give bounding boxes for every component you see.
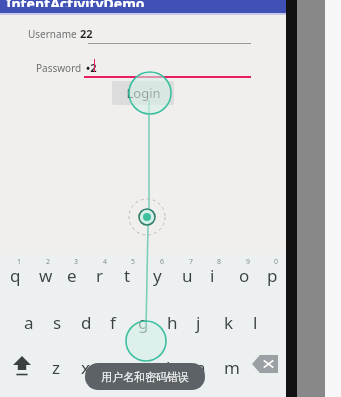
staticText: h bbox=[167, 311, 178, 334]
staticText: s bbox=[53, 311, 62, 334]
staticText: IntentActivityDemo bbox=[6, 0, 145, 7]
staticText: t bbox=[124, 264, 131, 287]
staticText: f bbox=[110, 311, 116, 334]
staticText: 7 bbox=[189, 257, 194, 267]
staticText: 用户名和密码错误 bbox=[101, 370, 189, 384]
button[interactable]: Username bbox=[28, 26, 253, 41]
staticText: 2 bbox=[46, 257, 51, 267]
staticText: i bbox=[210, 264, 215, 287]
staticText: 0 bbox=[274, 257, 279, 267]
staticText: j bbox=[196, 311, 201, 334]
staticText: 9 bbox=[246, 257, 251, 267]
button[interactable]: Password bbox=[36, 60, 251, 75]
staticText: b bbox=[166, 356, 177, 379]
staticText: Password bbox=[36, 61, 82, 75]
staticText: c bbox=[109, 356, 118, 379]
staticText: 8 bbox=[217, 257, 222, 267]
staticText: 4 bbox=[103, 257, 108, 267]
staticText: 22 bbox=[80, 26, 93, 41]
staticText: r bbox=[96, 264, 104, 287]
staticText: l bbox=[253, 311, 258, 334]
staticText: q bbox=[10, 264, 21, 287]
staticText: v bbox=[138, 356, 147, 379]
staticText: •2 bbox=[86, 60, 97, 75]
staticText: z bbox=[52, 356, 60, 379]
staticText: u bbox=[182, 264, 193, 287]
staticText: y bbox=[153, 264, 162, 287]
staticText: p bbox=[267, 264, 278, 287]
button[interactable]: Shift bbox=[8, 351, 36, 379]
staticText: 6 bbox=[160, 257, 165, 267]
staticText: 5 bbox=[131, 257, 136, 267]
staticText: n bbox=[195, 356, 206, 379]
button[interactable]: Login bbox=[112, 81, 174, 105]
staticText: x bbox=[81, 356, 90, 379]
staticText: m bbox=[224, 356, 240, 379]
staticText: e bbox=[67, 264, 77, 287]
staticText: Login bbox=[126, 84, 161, 102]
staticText: d bbox=[81, 311, 92, 334]
staticText: Username bbox=[28, 27, 77, 41]
staticText: 1 bbox=[17, 257, 22, 267]
button[interactable]: Backspace bbox=[252, 355, 278, 373]
staticText: k bbox=[224, 311, 234, 334]
staticText: a bbox=[24, 311, 34, 334]
staticText: o bbox=[239, 264, 250, 287]
staticText: w bbox=[39, 264, 53, 287]
staticText: g bbox=[138, 311, 149, 334]
staticText: 3 bbox=[74, 257, 79, 267]
